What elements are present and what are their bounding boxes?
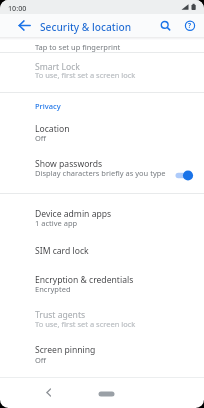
staticText: Screen pinning — [35, 344, 96, 356]
button[interactable] — [36, 384, 60, 402]
staticText: To use, first set a screen lock — [35, 319, 136, 329]
staticText: Location — [35, 123, 70, 135]
button[interactable]: Smart Lock — [0, 53, 204, 92]
button[interactable] — [153, 14, 177, 37]
staticText: Encrypted — [35, 284, 71, 294]
staticText: Security & location — [40, 20, 132, 34]
staticText: Show passwords — [35, 158, 103, 170]
staticText: 1 active app — [35, 218, 78, 228]
staticText: SIM card lock — [35, 245, 89, 257]
staticText: Display characters briefly as you type — [35, 168, 166, 178]
staticText: Off — [35, 355, 47, 365]
button[interactable]: Device admin apps — [0, 194, 204, 232]
button[interactable]: Trust agents — [0, 300, 204, 335]
staticText: Off — [35, 133, 47, 143]
button[interactable]: Screen pinning — [0, 335, 204, 370]
staticText: Trust agents — [35, 309, 86, 321]
staticText: ? — [188, 21, 192, 30]
button[interactable] — [12, 14, 36, 37]
button[interactable]: Encryption & credentials — [0, 266, 204, 300]
staticText: Privacy — [35, 101, 61, 111]
button[interactable]: SIM card lock — [0, 232, 204, 266]
button[interactable]: Show passwords — [0, 148, 204, 193]
button[interactable]: ? — [178, 14, 202, 37]
staticText: Encryption & credentials — [35, 274, 134, 286]
button[interactable]: Tap to set up fingerprint — [0, 37, 204, 52]
staticText: To use, first set a screen lock — [35, 70, 136, 80]
staticText: Device admin apps — [35, 208, 112, 220]
button[interactable] — [94, 386, 119, 400]
staticText: Tap to set up fingerprint — [35, 42, 121, 52]
staticText: 10:00 — [8, 3, 27, 13]
staticText: Smart Lock — [35, 61, 80, 73]
button[interactable]: Location — [0, 114, 204, 148]
